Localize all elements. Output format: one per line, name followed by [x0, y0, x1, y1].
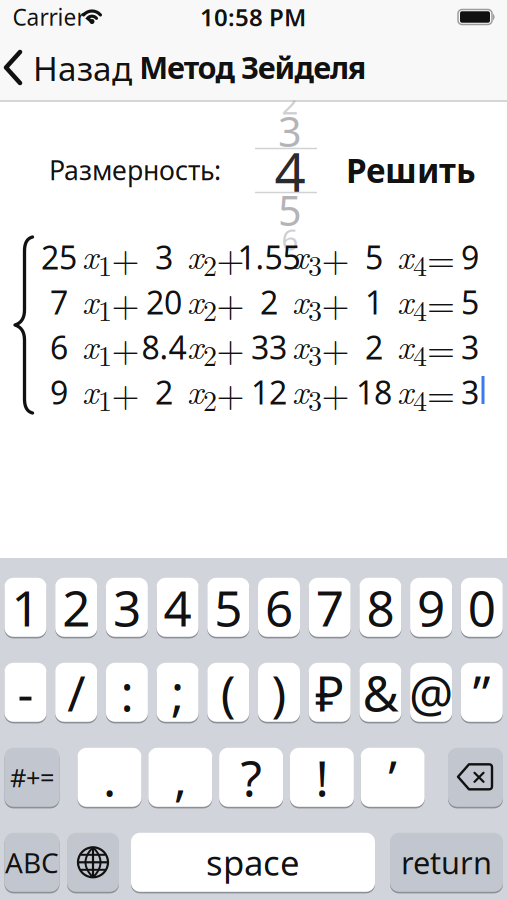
button[interactable]: 7 [309, 578, 351, 637]
staticText: = [427, 276, 455, 327]
button[interactable]: ₽ [309, 663, 351, 722]
staticText: 1.55 [237, 236, 300, 278]
staticText: = [427, 321, 455, 372]
staticText: x1 [82, 275, 112, 328]
staticText: + [216, 321, 244, 372]
button[interactable]: / [55, 663, 97, 722]
button[interactable]: & [359, 663, 401, 722]
button[interactable]: ) [258, 663, 300, 722]
staticText: 3 [155, 236, 173, 278]
staticText: 2 [260, 281, 278, 323]
staticText: #+= [10, 760, 54, 794]
button[interactable]: ” [461, 663, 503, 722]
staticText: @ [409, 659, 453, 725]
button[interactable]: 5 [207, 578, 249, 637]
staticText: 25 [41, 236, 77, 278]
staticText: = [427, 366, 455, 417]
button[interactable]: @ [410, 663, 452, 722]
button[interactable]: 2 [55, 578, 97, 637]
button[interactable]: space [131, 833, 375, 892]
staticText: 2 [62, 574, 90, 640]
button[interactable]: 6 [258, 578, 300, 637]
staticText: = [427, 231, 455, 282]
staticText: Carrier [12, 2, 85, 32]
staticText: ? [241, 744, 262, 810]
staticText: 10:58 PM [200, 1, 306, 33]
staticText: ₽ [315, 659, 344, 725]
button[interactable]: 9 [410, 578, 452, 637]
staticText: x2 [187, 320, 217, 373]
staticText: x2 [187, 275, 217, 328]
staticText: 9 [417, 574, 445, 640]
staticText: 5 [461, 281, 479, 323]
staticText: space [206, 839, 300, 885]
staticText: 6 [265, 574, 293, 640]
button[interactable]: ABC [4, 833, 59, 892]
staticText: ’ [388, 744, 397, 810]
staticText: x2 [187, 230, 217, 283]
button[interactable]: 3 [106, 578, 148, 637]
staticText: x1 [82, 320, 112, 373]
staticText: + [111, 276, 139, 327]
staticText: + [321, 231, 349, 282]
button[interactable]: Next keyboard [67, 833, 119, 892]
staticText: . [103, 744, 116, 810]
button[interactable]: #+= [4, 748, 59, 807]
button[interactable]: 0 [461, 578, 503, 637]
staticText: 8 [366, 574, 394, 640]
staticText: ( [221, 659, 236, 725]
staticText: x3 [292, 275, 322, 328]
staticText: 4 [274, 135, 305, 207]
button[interactable]: , [148, 748, 212, 807]
staticText: ; [171, 659, 184, 725]
staticText: 3 [278, 104, 302, 158]
staticText: ” [473, 659, 491, 725]
staticText: 5 [278, 183, 302, 237]
staticText: 1 [11, 574, 39, 640]
button[interactable]: 8 [359, 578, 401, 637]
staticText: ! [315, 744, 328, 810]
button[interactable]: ; [157, 663, 199, 722]
staticText: 20 [146, 281, 182, 323]
staticText: 3 [461, 326, 479, 368]
staticText: 7 [316, 574, 344, 640]
staticText: 33 [251, 326, 287, 368]
button[interactable]: - [4, 663, 46, 722]
staticText: x1 [82, 230, 112, 283]
staticText: 2 [365, 326, 383, 368]
staticText: + [111, 366, 139, 417]
staticText: Назад [33, 46, 132, 90]
staticText: 6 [50, 326, 68, 368]
staticText: x2 [187, 365, 217, 418]
staticText: x4 [397, 365, 427, 418]
button[interactable]: return [390, 833, 503, 892]
staticText: & [362, 659, 398, 725]
staticText: + [321, 276, 349, 327]
staticText: 9 [461, 236, 479, 278]
staticText: ) [271, 659, 286, 725]
button[interactable]: ( [207, 663, 249, 722]
staticText: : [120, 659, 133, 725]
button[interactable]: 1 [4, 578, 46, 637]
staticText: - [17, 659, 33, 725]
staticText: x3 [292, 365, 322, 418]
staticText: ABC [5, 844, 59, 881]
staticText: 9 [50, 371, 68, 413]
staticText: + [216, 366, 244, 417]
button[interactable]: Решить [346, 148, 476, 192]
button[interactable]: 4 [157, 578, 199, 637]
staticText: 3 [461, 371, 479, 413]
staticText: x4 [397, 230, 427, 283]
staticText: 18 [356, 371, 392, 413]
button[interactable]: ? [219, 748, 283, 807]
button[interactable]: Delete [448, 748, 503, 807]
button[interactable]: . [77, 748, 141, 807]
staticText: 8.4 [141, 326, 186, 368]
button[interactable]: ’ [361, 748, 425, 807]
button[interactable]: : [106, 663, 148, 722]
staticText: x3 [292, 320, 322, 373]
button[interactable]: ! [290, 748, 354, 807]
button[interactable]: Назад [6, 46, 132, 90]
staticText: x1 [82, 365, 112, 418]
staticText: 12 [251, 371, 287, 413]
